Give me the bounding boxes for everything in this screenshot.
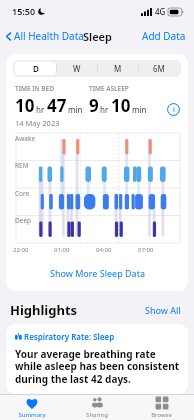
staticText: hr <box>100 104 109 115</box>
staticText: D <box>33 63 39 74</box>
staticText: TIME IN BED <box>15 84 54 93</box>
staticText: min <box>132 104 147 115</box>
staticText: Core <box>15 189 30 198</box>
button[interactable]: Info <box>167 103 180 116</box>
staticText: Sleep <box>83 29 112 44</box>
staticText: Summary <box>18 411 46 419</box>
staticText: min <box>68 104 83 115</box>
staticText: REM <box>15 161 29 170</box>
button[interactable]: W <box>56 62 97 75</box>
button[interactable]: Summary <box>0 395 64 420</box>
staticText: hr <box>36 104 45 115</box>
button[interactable]: Add Data <box>134 25 194 47</box>
staticText: 15:50 <box>12 5 36 17</box>
staticText: Your average breathing rate while asleep… <box>15 347 179 386</box>
button[interactable]: Show More Sleep Data <box>40 264 155 282</box>
staticText: 07:00 <box>138 246 154 254</box>
staticText: Deep <box>15 216 32 225</box>
staticText: Browse <box>151 411 172 419</box>
button[interactable]: D <box>15 62 56 75</box>
staticText: 10 <box>15 94 35 117</box>
button[interactable]: All Health Data <box>0 25 90 47</box>
staticText: TIME ASLEEP <box>89 84 129 93</box>
button[interactable]: Browse <box>129 395 194 420</box>
staticText: i <box>173 105 175 115</box>
staticText: 10 <box>111 94 131 117</box>
button[interactable]: M <box>97 62 138 75</box>
button[interactable]: 6M <box>138 62 179 75</box>
staticText: W <box>73 63 81 74</box>
staticText: Sharing <box>86 411 108 419</box>
button[interactable]: Respiratory Rate: Sleep <box>6 324 188 394</box>
button[interactable]: Sharing <box>64 395 129 420</box>
staticText: 9 <box>89 94 99 117</box>
staticText: M <box>114 63 122 74</box>
staticText: 01:00 <box>54 246 70 254</box>
staticText: 6M <box>153 63 165 74</box>
button[interactable]: Show All <box>142 301 184 319</box>
staticText: 47 <box>47 94 67 117</box>
staticText: Highlights <box>10 301 78 319</box>
staticText: 22:00 <box>13 246 29 254</box>
staticText: 14 May 2023 <box>15 118 60 128</box>
staticText: All Health Data <box>14 29 84 43</box>
staticText: 4G <box>155 6 166 17</box>
staticText: 04:00 <box>96 246 112 254</box>
staticText: Respiratory Rate: Sleep <box>24 331 115 342</box>
staticText: Awake <box>15 134 36 143</box>
